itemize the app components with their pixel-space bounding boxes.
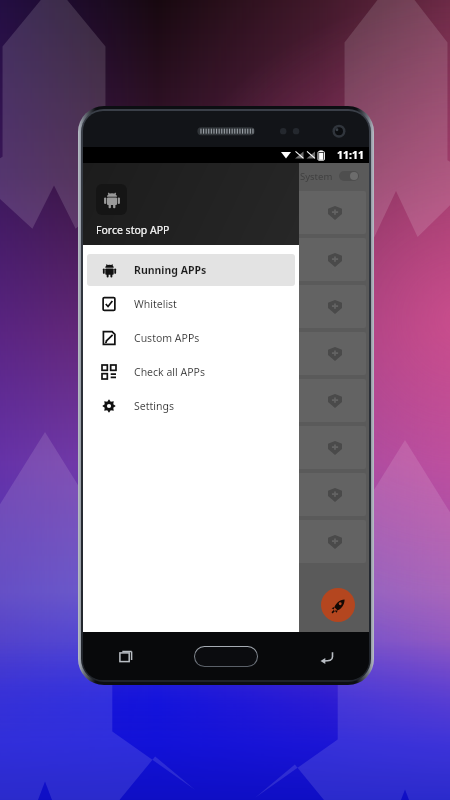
button[interactable]: Whitelist: [87, 288, 295, 320]
button[interactable]: [339, 171, 359, 181]
button[interactable]: Settings: [87, 390, 295, 422]
button[interactable]: Home: [194, 646, 258, 667]
button[interactable]: [86, 426, 366, 469]
staticText: Custom APPs: [134, 331, 200, 345]
button[interactable]: [86, 191, 366, 234]
staticText: Running APPs: [134, 263, 207, 277]
button[interactable]: Back: [309, 639, 343, 673]
button[interactable]: [86, 520, 366, 563]
staticText: Force stop APP: [96, 223, 170, 237]
staticText: Settings: [134, 399, 174, 413]
button[interactable]: [86, 473, 366, 516]
staticText: 11:11: [337, 148, 364, 162]
button[interactable]: Custom APPs: [87, 322, 295, 354]
button[interactable]: [86, 238, 366, 281]
staticText: Whitelist: [134, 297, 177, 311]
button[interactable]: Running APPs: [87, 254, 295, 286]
button[interactable]: [86, 285, 366, 328]
staticText: Check all APPs: [134, 365, 205, 379]
button[interactable]: Boost: [321, 588, 355, 622]
button[interactable]: [86, 379, 366, 422]
button[interactable]: Check all APPs: [87, 356, 295, 388]
button[interactable]: Recents: [109, 639, 143, 673]
button[interactable]: [86, 332, 366, 375]
staticText: System: [300, 170, 333, 183]
